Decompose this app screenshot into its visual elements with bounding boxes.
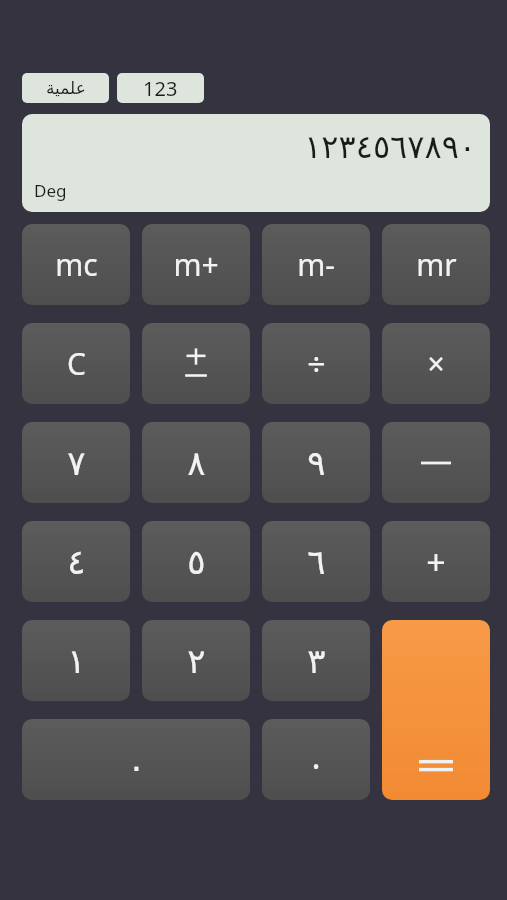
button[interactable]: m- [262, 224, 370, 305]
button[interactable]: ٦ [262, 521, 370, 602]
button[interactable]: mr [382, 224, 490, 305]
button[interactable]: mc [22, 224, 130, 305]
staticText: ٠ [127, 746, 146, 786]
button[interactable]: ٨ [142, 422, 250, 503]
button[interactable]: ٧ [22, 422, 130, 503]
staticText: ٢ [187, 641, 206, 681]
button[interactable]: ١ [22, 620, 130, 701]
staticText: ٦ [307, 542, 326, 582]
button[interactable]: . [262, 719, 370, 800]
staticText: . [311, 733, 321, 779]
button[interactable]: ٢ [142, 620, 250, 701]
staticText: 123 [143, 75, 178, 102]
staticText: ٥ [187, 542, 206, 582]
button[interactable]: C [22, 323, 130, 404]
staticText: mr [416, 244, 457, 285]
staticText: Deg [34, 179, 67, 202]
button[interactable]: ٣ [262, 620, 370, 701]
button[interactable]: ٤ [22, 521, 130, 602]
button[interactable]: Plus minus [142, 323, 250, 404]
button[interactable]: m+ [142, 224, 250, 305]
button[interactable]: ٩ [262, 422, 370, 503]
button[interactable]: Plus [382, 521, 490, 602]
button[interactable]: Minus [382, 422, 490, 503]
staticText: ٩ [307, 443, 326, 483]
staticText: + [426, 539, 446, 585]
button[interactable]: ٠ [22, 719, 250, 800]
button[interactable]: علمية [22, 73, 109, 103]
staticText: ÷ [307, 342, 326, 386]
button[interactable]: Divide [262, 323, 370, 404]
staticText: × [427, 343, 445, 384]
button[interactable]: ٥ [142, 521, 250, 602]
staticText: m+ [173, 244, 219, 285]
staticText: علمية [46, 78, 86, 98]
button[interactable]: Multiply [382, 323, 490, 404]
staticText: ١ [67, 641, 86, 681]
staticText: mc [55, 244, 98, 285]
staticText: ٨ [187, 443, 206, 483]
staticText: ١٢٣٤٥٦٧٨٩٠ [304, 128, 476, 165]
button[interactable]: ١٢٣٤٥٦٧٨٩٠ [22, 114, 490, 212]
staticText: m- [297, 244, 335, 285]
staticText: C [67, 343, 86, 384]
button[interactable]: 123 [117, 73, 204, 103]
staticText: ٧ [67, 443, 86, 483]
staticText: ٤ [67, 542, 86, 582]
button[interactable]: Equals [382, 620, 490, 800]
staticText: ٣ [307, 641, 326, 681]
